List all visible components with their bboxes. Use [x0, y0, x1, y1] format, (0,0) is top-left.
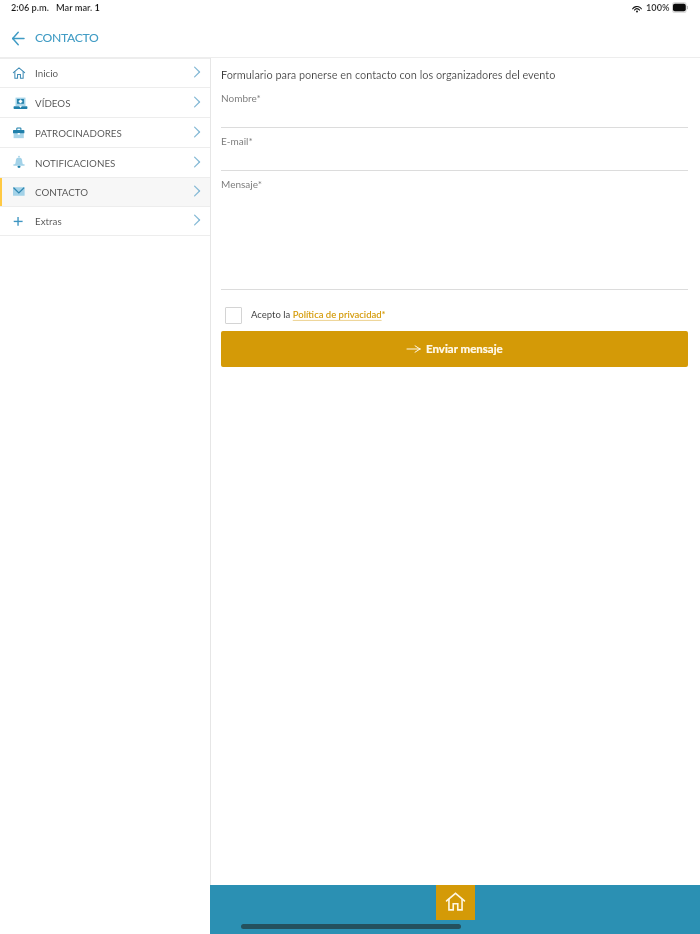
button[interactable]: Extras	[0, 207, 210, 235]
staticText: 2:06 p.m.	[11, 2, 49, 13]
staticText: Enviar mensaje	[426, 342, 503, 356]
button[interactable]: Home	[436, 885, 475, 920]
button[interactable]: PATROCINADORES	[0, 118, 210, 147]
staticText: Nombre*	[221, 92, 261, 104]
staticText: Formulario para ponerse en contacto con …	[221, 68, 556, 81]
button[interactable]: Enviar mensaje	[221, 331, 688, 367]
staticText: NOTIFICACIONES	[35, 157, 116, 169]
staticText: Extras	[35, 215, 62, 227]
button[interactable]: NOTIFICACIONES	[0, 148, 210, 177]
staticText: 100%	[646, 2, 670, 13]
staticText: Mar mar. 1	[56, 2, 100, 13]
button[interactable]: Acepto la Política de privacidad*	[225, 307, 386, 324]
button[interactable]: CONTACTO	[0, 178, 210, 206]
staticText: CONTACTO	[35, 30, 99, 45]
staticText: Inicio	[35, 67, 59, 79]
staticText: VÍDEOS	[35, 97, 71, 109]
button[interactable]: Inicio	[0, 59, 210, 87]
staticText: E-mail*	[221, 135, 253, 147]
button[interactable]: VÍDEOS	[0, 88, 210, 117]
staticText: CONTACTO	[35, 186, 89, 198]
staticText: Mensaje*	[221, 178, 262, 190]
button[interactable]: Back	[8, 28, 28, 48]
staticText: Acepto la Política de privacidad*	[251, 309, 386, 320]
staticText: PATROCINADORES	[35, 127, 122, 139]
